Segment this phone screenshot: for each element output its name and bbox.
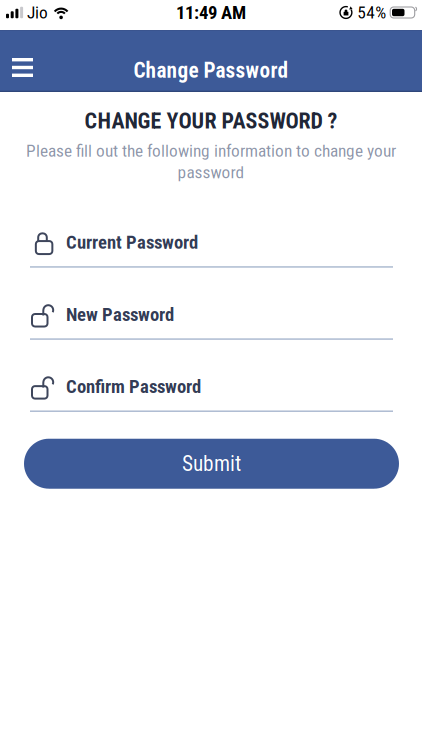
staticText: New Password xyxy=(66,304,174,325)
button[interactable]: Confirm Password xyxy=(0,375,422,412)
staticText: Confirm Password xyxy=(66,376,201,398)
staticText: Please fill out the following informatio… xyxy=(26,141,396,161)
button[interactable]: New Password xyxy=(0,302,422,340)
button[interactable] xyxy=(0,45,33,77)
staticText: 11:49 AM xyxy=(176,2,246,23)
staticText: CHANGE YOUR PASSWORD ? xyxy=(84,108,337,134)
staticText: Change Password xyxy=(133,58,288,83)
staticText: password xyxy=(177,162,244,182)
button[interactable]: Submit xyxy=(0,439,422,489)
button[interactable]: Current Password xyxy=(0,230,422,267)
staticText: Current Password xyxy=(66,231,198,253)
staticText: Jio xyxy=(27,2,48,23)
staticText: 54% xyxy=(357,2,386,23)
staticText: Submit xyxy=(182,451,241,476)
